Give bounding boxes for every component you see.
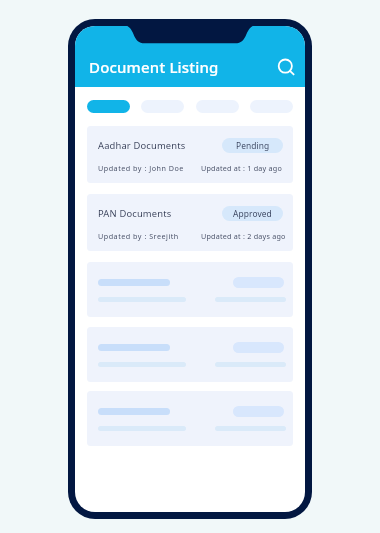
button[interactable]: Filter 3 <box>196 100 239 113</box>
button[interactable]: Loading document <box>87 391 293 446</box>
staticText: Document Listing <box>89 57 219 77</box>
button[interactable]: PAN Documents <box>87 194 293 251</box>
button[interactable]: Filter 2 <box>141 100 184 113</box>
button[interactable]: Loading document <box>87 262 293 317</box>
staticText: Updated by : John Doe <box>98 163 184 173</box>
button[interactable]: Search <box>273 56 297 80</box>
button[interactable]: Loading document <box>87 327 293 382</box>
button[interactable]: Filter 4 <box>250 100 293 113</box>
button[interactable]: Aadhar Documents <box>87 126 293 183</box>
staticText: PAN Documents <box>98 207 172 220</box>
staticText: Updated at : 1 day ago <box>201 163 282 173</box>
staticText: Pending <box>236 140 270 151</box>
button[interactable]: Filter 1 <box>87 100 130 113</box>
staticText: Approved <box>233 208 272 219</box>
staticText: Updated by : Sreejith <box>98 231 179 241</box>
staticText: Aadhar Documents <box>98 139 186 152</box>
staticText: Updated at : 2 days ago <box>201 231 286 241</box>
